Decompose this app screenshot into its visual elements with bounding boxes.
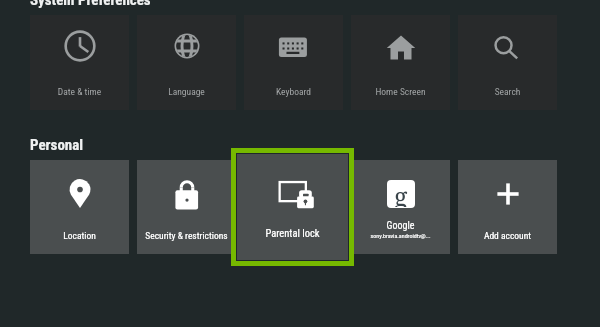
button[interactable]: Add account: [458, 160, 557, 254]
other: Language: [169, 28, 205, 64]
other: Home Screen: [383, 28, 419, 64]
other: Add account: [490, 176, 526, 212]
staticText: g: [394, 180, 408, 207]
staticText: Add account: [458, 230, 557, 241]
staticText: sony.bravia.androidtv@...: [351, 232, 450, 239]
staticText: Security & restrictions: [137, 230, 236, 241]
other: Date & time: [62, 28, 98, 64]
button[interactable]: Location: [30, 160, 129, 254]
button[interactable]: Keyboard: [244, 15, 343, 110]
staticText: Parental lock: [237, 227, 348, 239]
button[interactable]: Security & restrictions: [137, 160, 236, 254]
staticText: Keyboard: [244, 86, 343, 97]
other: Security & restrictions: [169, 176, 205, 212]
button[interactable]: Date & time: [30, 15, 129, 110]
other: Search: [490, 28, 526, 64]
staticText: Home Screen: [351, 86, 450, 97]
staticText: Language: [137, 86, 236, 97]
other: Google account: [383, 176, 419, 212]
staticText: Date & time: [30, 86, 129, 97]
staticText: Personal: [30, 136, 84, 154]
other: Parental lock: [276, 175, 316, 215]
staticText: Google: [351, 220, 450, 232]
button[interactable]: Google account: [351, 160, 450, 254]
button[interactable]: Home Screen: [351, 15, 450, 110]
button[interactable]: Parental lock: [237, 154, 348, 260]
other: Location: [62, 176, 98, 212]
button[interactable]: Language: [137, 15, 236, 110]
staticText: Location: [30, 230, 129, 241]
staticText: System Preferences: [30, 0, 151, 9]
staticText: Search: [458, 86, 557, 97]
button[interactable]: Search: [458, 15, 557, 110]
other: Keyboard: [276, 28, 312, 64]
